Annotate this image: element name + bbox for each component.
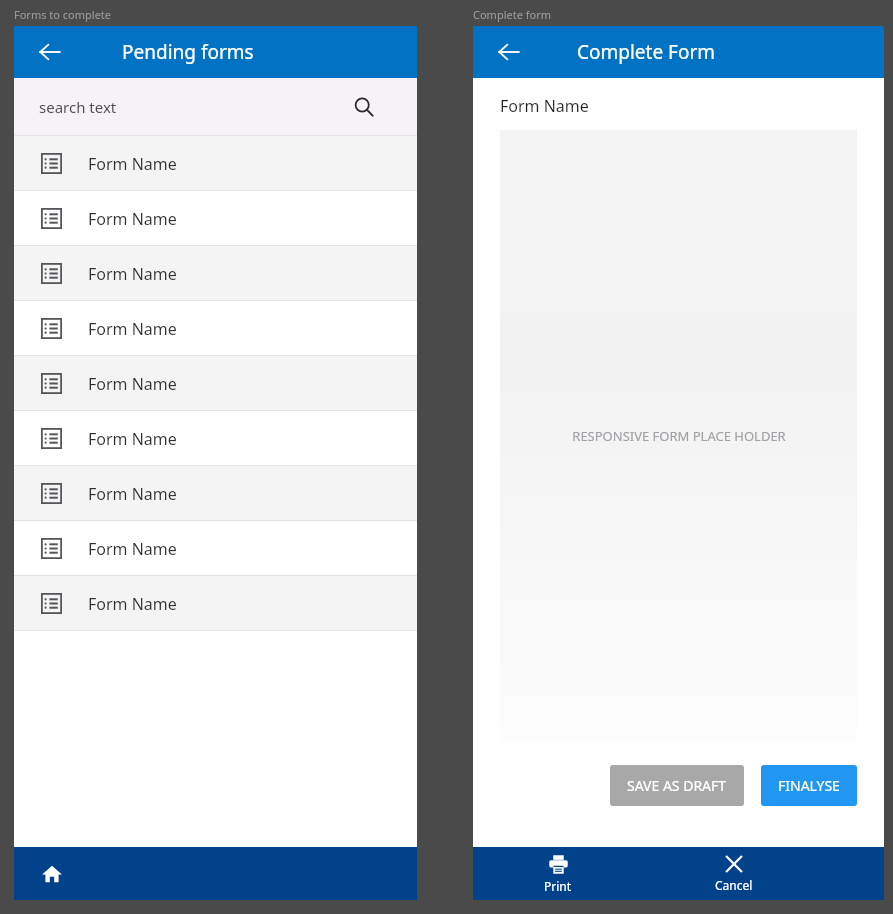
button[interactable]: FINALYSE <box>761 765 857 806</box>
staticText: Forms to complete <box>14 7 112 22</box>
staticText: SAVE AS DRAFT <box>627 776 727 795</box>
staticText: RESPONSIVE FORM PLACE HOLDER <box>572 427 786 445</box>
button[interactable]: Form Name <box>14 136 417 191</box>
staticText: Form Name <box>88 483 177 505</box>
button[interactable]: Back <box>28 30 72 74</box>
staticText: Form Name <box>88 538 177 560</box>
button[interactable]: Back <box>487 30 531 74</box>
staticText: search text <box>39 97 117 117</box>
button[interactable]: Form Name <box>14 246 417 301</box>
staticText: Complete Form <box>577 39 716 65</box>
staticText: Form Name <box>88 373 177 395</box>
staticText: Form Name <box>88 428 177 450</box>
button[interactable]: Form Name <box>14 466 417 521</box>
button[interactable]: Cancel <box>691 847 777 900</box>
staticText: Complete form <box>473 7 552 22</box>
button[interactable]: Form Name <box>14 356 417 411</box>
button[interactable]: Form Name <box>14 191 417 246</box>
staticText: Print <box>544 878 572 894</box>
button[interactable]: Form Name <box>14 521 417 576</box>
staticText: Form Name <box>88 263 177 285</box>
button[interactable]: SAVE AS DRAFT <box>610 765 744 806</box>
button[interactable]: Search <box>347 90 381 124</box>
staticText: Form Name <box>88 318 177 340</box>
staticText: Cancel <box>715 877 753 893</box>
button[interactable]: Print <box>515 847 601 900</box>
staticText: Form Name <box>88 208 177 230</box>
staticText: Pending forms <box>122 39 254 65</box>
staticText: FINALYSE <box>778 776 840 795</box>
staticText: Form Name <box>88 153 177 175</box>
staticText: Form Name <box>500 95 589 117</box>
button[interactable]: Form Name <box>14 411 417 466</box>
button[interactable]: Form Name <box>14 576 417 631</box>
button[interactable]: Form Name <box>14 301 417 356</box>
button[interactable]: search text <box>14 78 417 136</box>
staticText: Form Name <box>88 593 177 615</box>
button[interactable]: Home <box>30 852 74 896</box>
